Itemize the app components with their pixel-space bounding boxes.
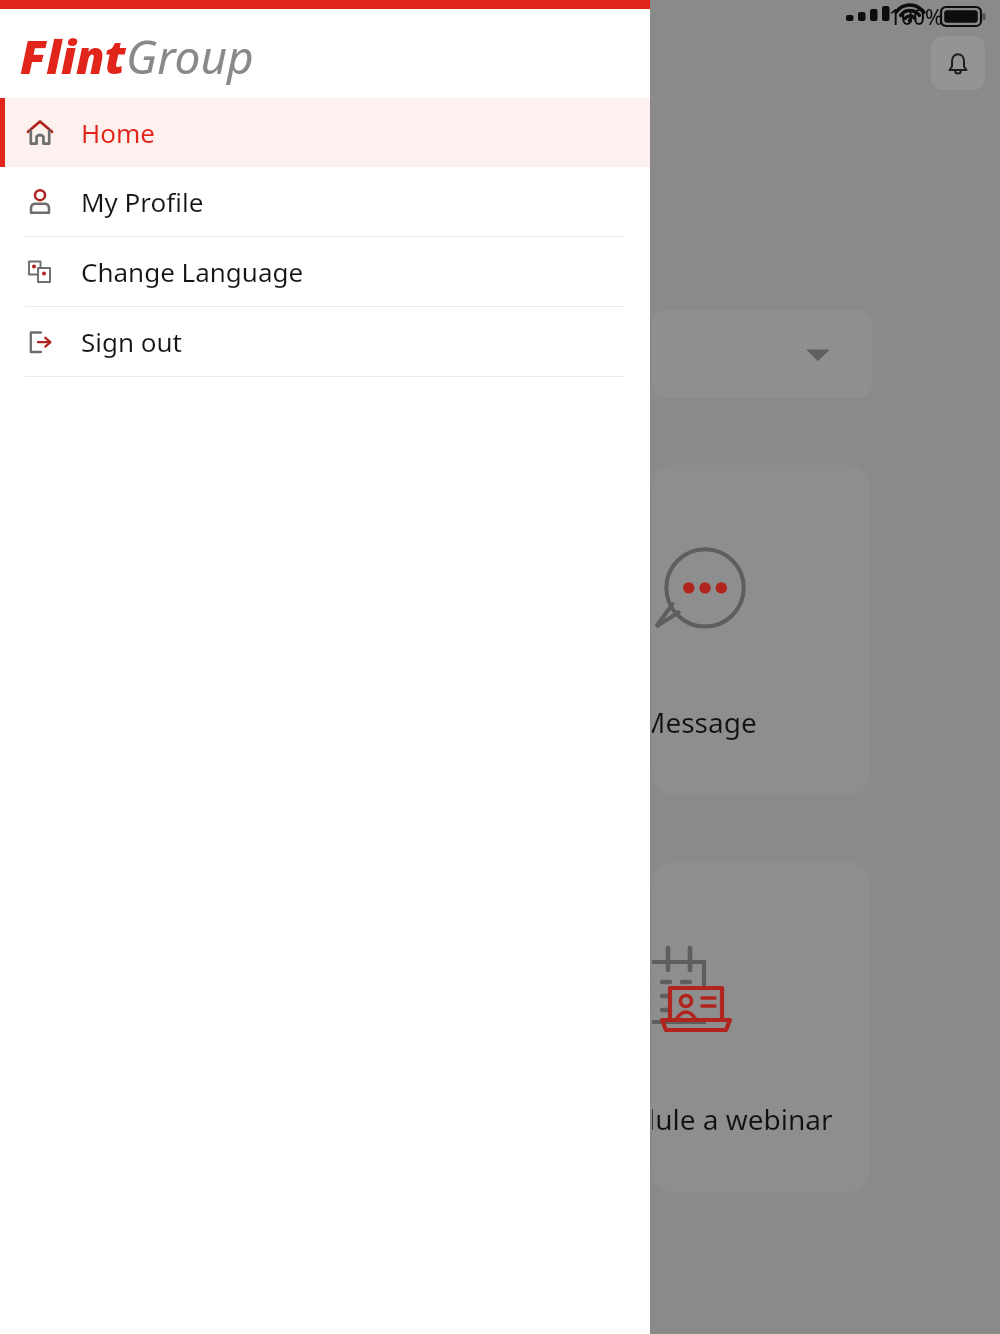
button[interactable]: Sign out: [0, 307, 650, 376]
staticText: Change Language: [81, 254, 304, 289]
staticText: dule a webinar: [652, 1100, 833, 1138]
button[interactable]: [652, 310, 872, 398]
button[interactable]: Home: [0, 98, 650, 167]
staticText: My Profile: [81, 184, 204, 219]
staticText: Group: [126, 25, 254, 88]
staticText: Sign out: [81, 324, 182, 359]
button[interactable]: My Profile: [0, 167, 650, 236]
button[interactable]: Change Language: [0, 237, 650, 306]
staticText: 100%: [889, 3, 943, 32]
button[interactable]: dule a webinar: [652, 862, 870, 1192]
staticText: Home: [81, 115, 155, 150]
button[interactable]: Message: [652, 465, 870, 795]
button[interactable]: Notifications: [931, 36, 985, 90]
staticText: Flint: [20, 25, 126, 88]
staticText: Message: [652, 703, 757, 741]
